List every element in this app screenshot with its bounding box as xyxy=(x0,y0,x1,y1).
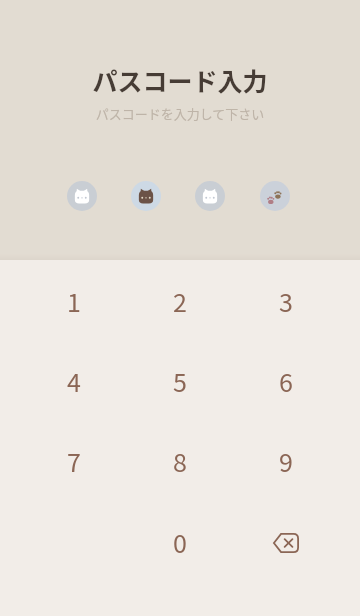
staticText: 8 xyxy=(173,443,187,479)
button[interactable]: 4 xyxy=(29,349,119,413)
staticText: 5 xyxy=(173,363,187,399)
staticText: 3 xyxy=(279,283,293,319)
button[interactable]: 3 xyxy=(241,269,331,333)
button[interactable]: 2 xyxy=(135,269,225,333)
staticText: 4 xyxy=(67,363,81,399)
staticText: 0 xyxy=(173,524,187,560)
staticText: 7 xyxy=(67,443,81,479)
staticText: 9 xyxy=(279,443,293,479)
staticText: パスコードを入力して下さい xyxy=(0,104,360,123)
button[interactable]: 0 xyxy=(135,510,225,574)
staticText: 1 xyxy=(67,283,81,319)
button[interactable]: 5 xyxy=(135,349,225,413)
button[interactable]: 8 xyxy=(135,429,225,493)
button[interactable]: 1 xyxy=(29,269,119,333)
button[interactable]: 9 xyxy=(241,429,331,493)
button[interactable]: Backspace xyxy=(241,510,331,574)
button[interactable]: 7 xyxy=(29,429,119,493)
button[interactable]: 6 xyxy=(241,349,331,413)
staticText: 6 xyxy=(279,363,293,399)
staticText: 2 xyxy=(173,283,187,319)
staticText: パスコード入力 xyxy=(0,62,360,98)
